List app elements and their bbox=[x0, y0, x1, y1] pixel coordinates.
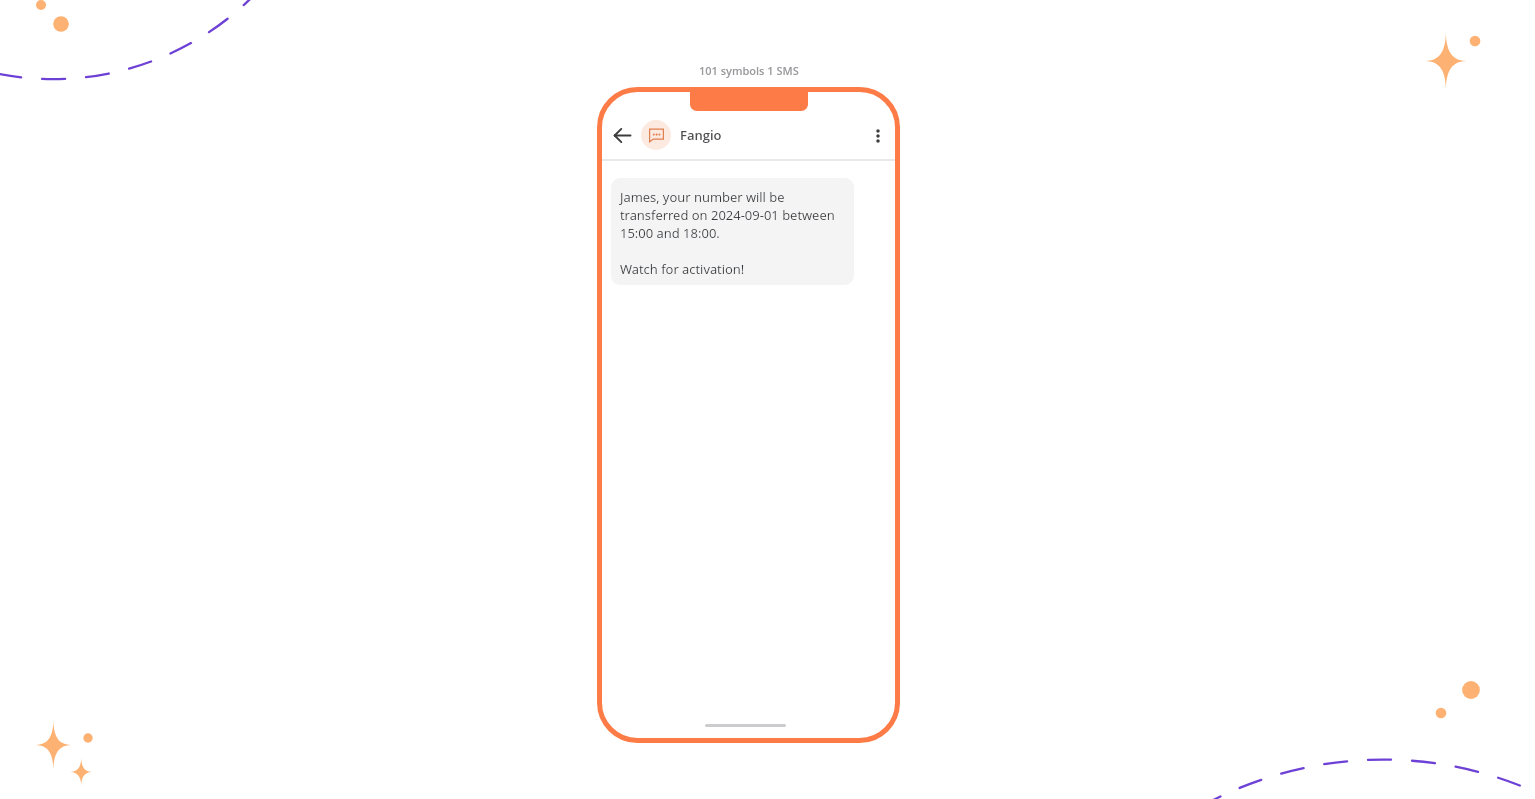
staticText: James, your number will be transferred o… bbox=[620, 188, 845, 278]
button[interactable]: James, your number will be transferred o… bbox=[611, 178, 854, 285]
button[interactable]: Fangio bbox=[680, 126, 722, 144]
button[interactable]: More options bbox=[867, 124, 889, 146]
button[interactable]: Conversation avatar bbox=[641, 120, 671, 150]
button[interactable]: Back bbox=[611, 124, 633, 146]
staticText: Fangio bbox=[680, 126, 722, 144]
staticText: 101 symbols 1 SMS bbox=[699, 63, 799, 78]
